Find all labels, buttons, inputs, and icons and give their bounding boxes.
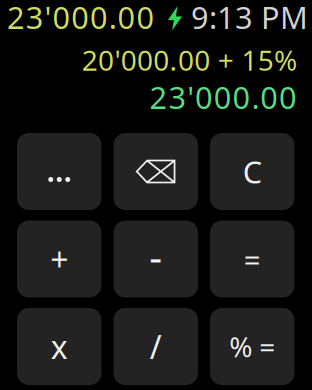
staticText: / xyxy=(150,325,162,368)
button[interactable]: % = xyxy=(210,308,294,385)
staticText: = xyxy=(244,239,261,278)
button[interactable]: C xyxy=(210,133,294,210)
staticText: x xyxy=(51,325,68,368)
staticText: 20'000.00 + 15% xyxy=(82,41,297,79)
button[interactable]: / xyxy=(113,308,198,385)
staticText: 9:13 PM xyxy=(191,0,308,37)
staticText: C xyxy=(243,151,262,192)
button[interactable]: - xyxy=(113,220,198,297)
button[interactable]: + xyxy=(17,220,101,297)
button[interactable]: x xyxy=(17,308,101,385)
staticText: 23'000.00 xyxy=(7,0,154,37)
staticText: + xyxy=(50,238,68,280)
staticText: 23'000.00 xyxy=(150,77,297,117)
staticText: - xyxy=(149,229,162,282)
button[interactable]: Delete xyxy=(113,133,198,210)
staticText: % = xyxy=(229,328,275,365)
button[interactable]: More xyxy=(17,133,101,210)
button[interactable]: = xyxy=(210,220,294,297)
